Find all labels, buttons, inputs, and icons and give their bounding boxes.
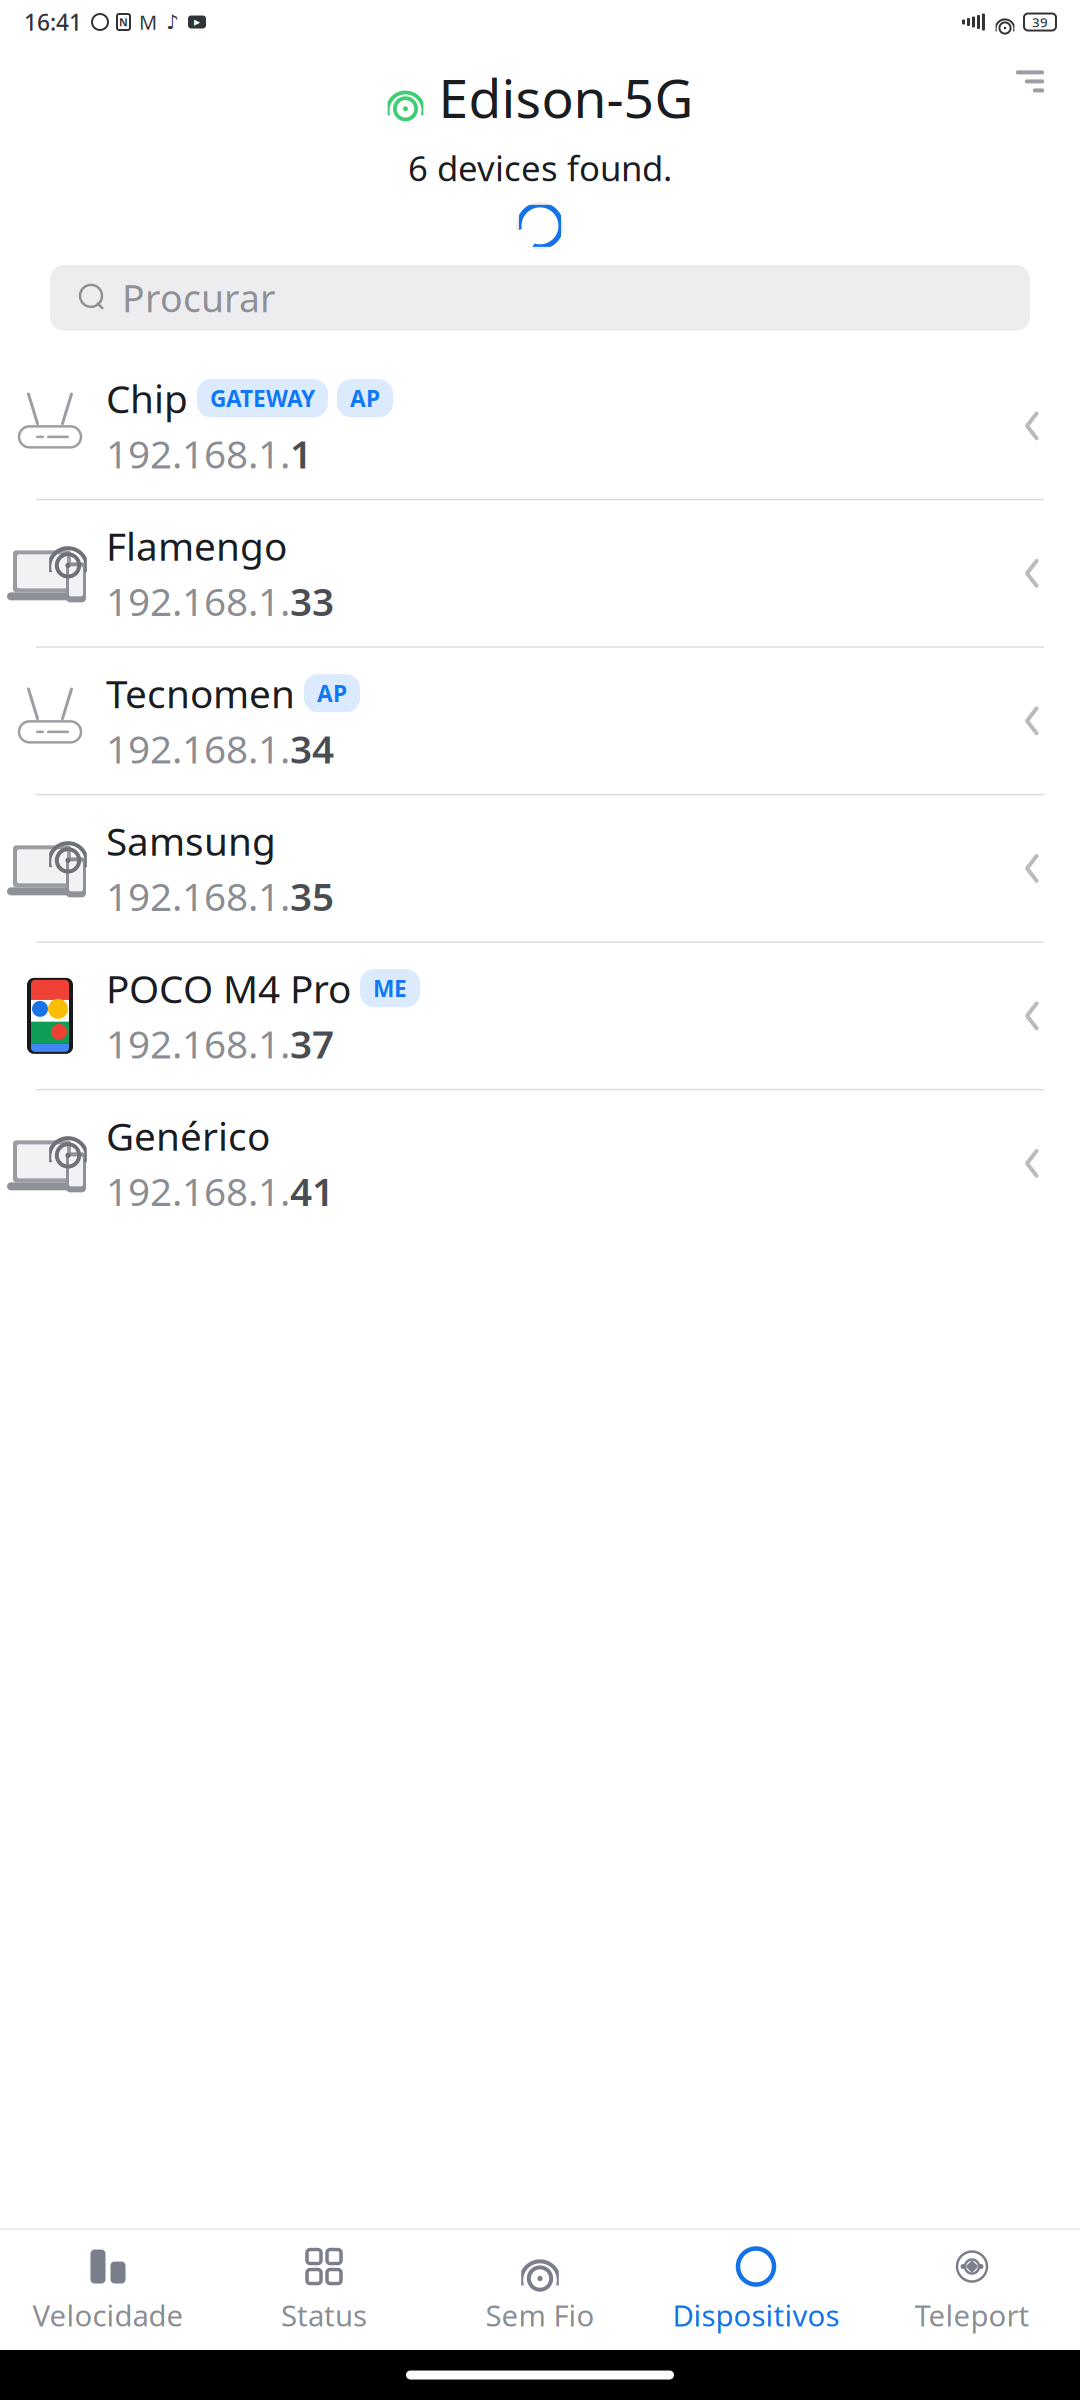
button[interactable]: Sem Fio [432,2233,648,2346]
staticText: Tecnomen [106,667,295,719]
staticText: AP [317,678,347,708]
staticText: 192.168.1. [106,870,290,922]
staticText: 16:41 [24,7,82,37]
staticText: ♪ [166,11,179,33]
staticText: 192.168.1. [106,428,290,479]
staticText: 35 [290,870,334,922]
staticText: 37 [290,1018,334,1069]
staticText: Velocidade [32,2295,183,2334]
button[interactable]: Status [216,2233,432,2346]
button[interactable]: Flamengo [0,500,1080,648]
staticText: 39 [1032,13,1048,31]
staticText: ME [373,973,407,1003]
button[interactable]: Genérico [0,1090,1080,1236]
staticText: 41 [290,1165,334,1217]
staticText: Samsung [106,815,276,866]
staticText: 192.168.1. [106,1165,290,1217]
staticText: 192.168.1. [106,1018,290,1069]
button[interactable]: Procurar [50,265,1030,331]
staticText: Teleport [914,2295,1029,2334]
staticText: 192.168.1. [106,723,290,774]
staticText: POCO M4 Pro [106,962,351,1014]
staticText: N [119,15,128,29]
staticText: 192.168.1. [106,575,290,627]
button[interactable]: Sort [998,52,1062,110]
button[interactable]: Tecnomen [0,648,1080,795]
staticText: 34 [290,723,334,774]
staticText: ▶ [194,17,200,27]
staticText: 33 [290,575,334,627]
staticText: 1 [290,428,312,479]
staticText: Genérico [106,1110,270,1161]
staticText: Dispositivos [672,2295,839,2334]
staticText: Sem Fio [485,2295,594,2334]
button[interactable]: POCO M4 Pro [0,943,1080,1090]
staticText: Status [281,2295,367,2334]
staticText: Edison-5G [438,62,693,133]
button[interactable]: Teleport [864,2233,1080,2346]
button[interactable]: Velocidade [0,2233,216,2346]
button[interactable]: Samsung [0,795,1080,943]
staticText: GATEWAY [210,383,315,413]
staticText: M [139,9,157,35]
staticText: AP [350,383,380,413]
button[interactable]: Chip [0,353,1080,500]
staticText: Procurar [122,273,275,323]
staticText: 6 devices found. [408,145,672,191]
button[interactable]: Dispositivos [648,2233,864,2346]
staticText: Chip [106,372,188,424]
staticText: Flamengo [106,520,287,571]
